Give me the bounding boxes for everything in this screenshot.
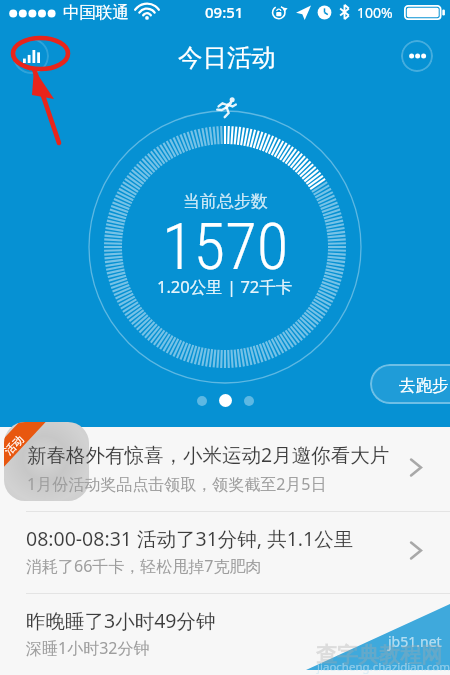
- staticText: 消耗了66千卡，轻松甩掉7克肥肉: [26, 555, 262, 577]
- staticText: jb51.net: [388, 632, 442, 651]
- button[interactable]: More options: [401, 40, 433, 72]
- button[interactable]: 去跑步: [370, 364, 450, 404]
- staticText: 今日活动: [178, 42, 276, 73]
- staticText: 100%: [357, 3, 393, 22]
- staticText: 08:00-08:31 活动了31分钟, 共1.1公里: [26, 525, 354, 552]
- button[interactable]: 08:00-08:31 活动了31分钟, 共1.1公里: [0, 512, 450, 593]
- button[interactable]: Statistics: [13, 38, 49, 74]
- staticText: 1570: [162, 209, 289, 285]
- staticText: 去跑步: [399, 375, 449, 396]
- staticText: 中国联通: [63, 2, 129, 23]
- staticText: 查字典教程网: [316, 642, 442, 668]
- button[interactable]: 昨晚睡了3小时49分钟: [0, 594, 450, 675]
- staticText: 1.20公里 | 72千卡: [157, 275, 293, 298]
- staticText: 新春格外有惊喜，小米运动2月邀你看大片: [27, 441, 390, 468]
- staticText: jiaocheng.chazidian.com: [317, 659, 450, 675]
- staticText: 当前总步数: [183, 191, 268, 212]
- staticText: 昨晚睡了3小时49分钟: [26, 607, 216, 634]
- staticText: 09:51: [205, 2, 244, 22]
- button[interactable]: 新春格外有惊喜，小米运动2月邀你看大片: [0, 427, 450, 511]
- staticText: 深睡1小时32分钟: [26, 637, 150, 659]
- staticText: 活动: [4, 432, 27, 458]
- staticText: 1月份活动奖品点击领取，领奖截至2月5日: [27, 473, 327, 495]
